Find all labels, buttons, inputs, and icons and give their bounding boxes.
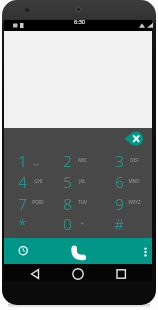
button[interactable]: 0 (47, 214, 87, 234)
button[interactable] (23, 265, 47, 282)
staticText: 7 (18, 194, 27, 214)
staticText: + (80, 220, 84, 227)
staticText: 1 (18, 151, 27, 171)
button[interactable]: 4 (2, 172, 42, 192)
button[interactable]: * (2, 214, 42, 234)
staticText: 0 (63, 214, 72, 234)
staticText: MNO (128, 178, 140, 184)
button[interactable] (64, 265, 92, 282)
button[interactable]: 3 (99, 151, 139, 171)
staticText: 5 (63, 172, 72, 192)
button[interactable]: # (99, 214, 139, 234)
staticText: 6:30 (74, 18, 85, 25)
button[interactable] (118, 129, 148, 146)
staticText: 8 (63, 194, 72, 214)
staticText: TUV (78, 199, 87, 205)
button[interactable]: 6 (99, 172, 139, 192)
button[interactable]: 2 (47, 151, 87, 171)
button[interactable]: 9 (99, 194, 139, 214)
button[interactable] (108, 265, 134, 282)
staticText: DEF (130, 157, 139, 163)
button[interactable] (62, 241, 95, 262)
staticText: JKL (79, 178, 86, 184)
staticText: GHI (34, 178, 43, 184)
button[interactable]: 1 (2, 151, 42, 171)
button[interactable] (11, 243, 36, 261)
staticText: 4 (18, 172, 27, 192)
staticText: 2 (63, 151, 72, 171)
staticText: 3 (115, 151, 124, 171)
staticText: 9 (115, 194, 124, 214)
staticText: PQRS (32, 199, 44, 205)
staticText: 6 (115, 172, 124, 192)
button[interactable]: 8 (47, 194, 87, 214)
staticText: # (114, 214, 124, 234)
staticText: ABC (78, 157, 87, 163)
staticText: * (18, 214, 27, 234)
button[interactable] (138, 243, 153, 261)
button[interactable]: 7 (2, 194, 42, 214)
staticText: WXYZ (128, 199, 141, 205)
button[interactable]: 5 (47, 172, 87, 192)
